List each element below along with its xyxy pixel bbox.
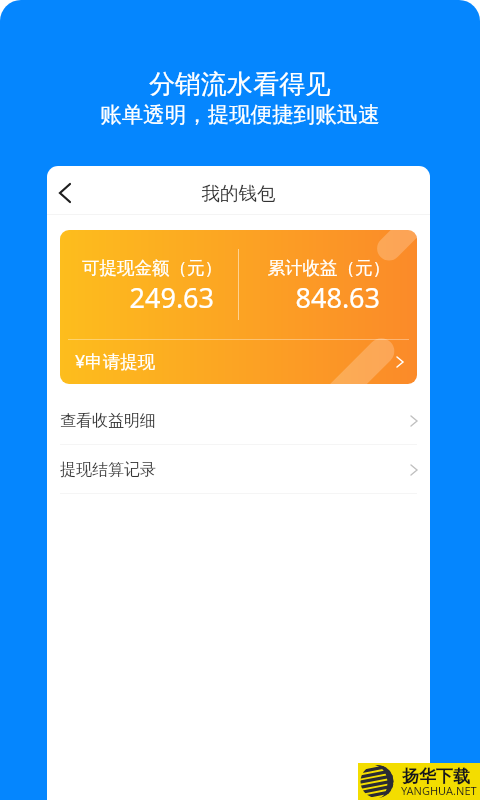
staticText: 848.63 (238, 279, 380, 316)
staticText: YANGHUA.NET (401, 783, 477, 798)
staticText: 扬华下载 (402, 766, 470, 787)
staticText: ¥申请提现 (75, 349, 156, 373)
staticText: 我的钱包 (47, 182, 430, 205)
staticText: 查看收益明细 (60, 411, 156, 431)
button[interactable]: 提现结算记录 (47, 445, 430, 494)
staticText: 账单透明，提现便捷到账迅速 (0, 101, 480, 128)
staticText: 分销流水看得见 (0, 68, 480, 101)
button[interactable]: Back (47, 166, 89, 214)
staticText: 249.63 (60, 279, 214, 316)
button[interactable]: 查看收益明细 (47, 396, 430, 445)
staticText: 累计收益（元） (238, 257, 390, 279)
staticText: 可提现金额（元） (60, 257, 222, 279)
button[interactable]: ¥申请提现 (60, 340, 417, 384)
staticText: 提现结算记录 (60, 460, 156, 480)
